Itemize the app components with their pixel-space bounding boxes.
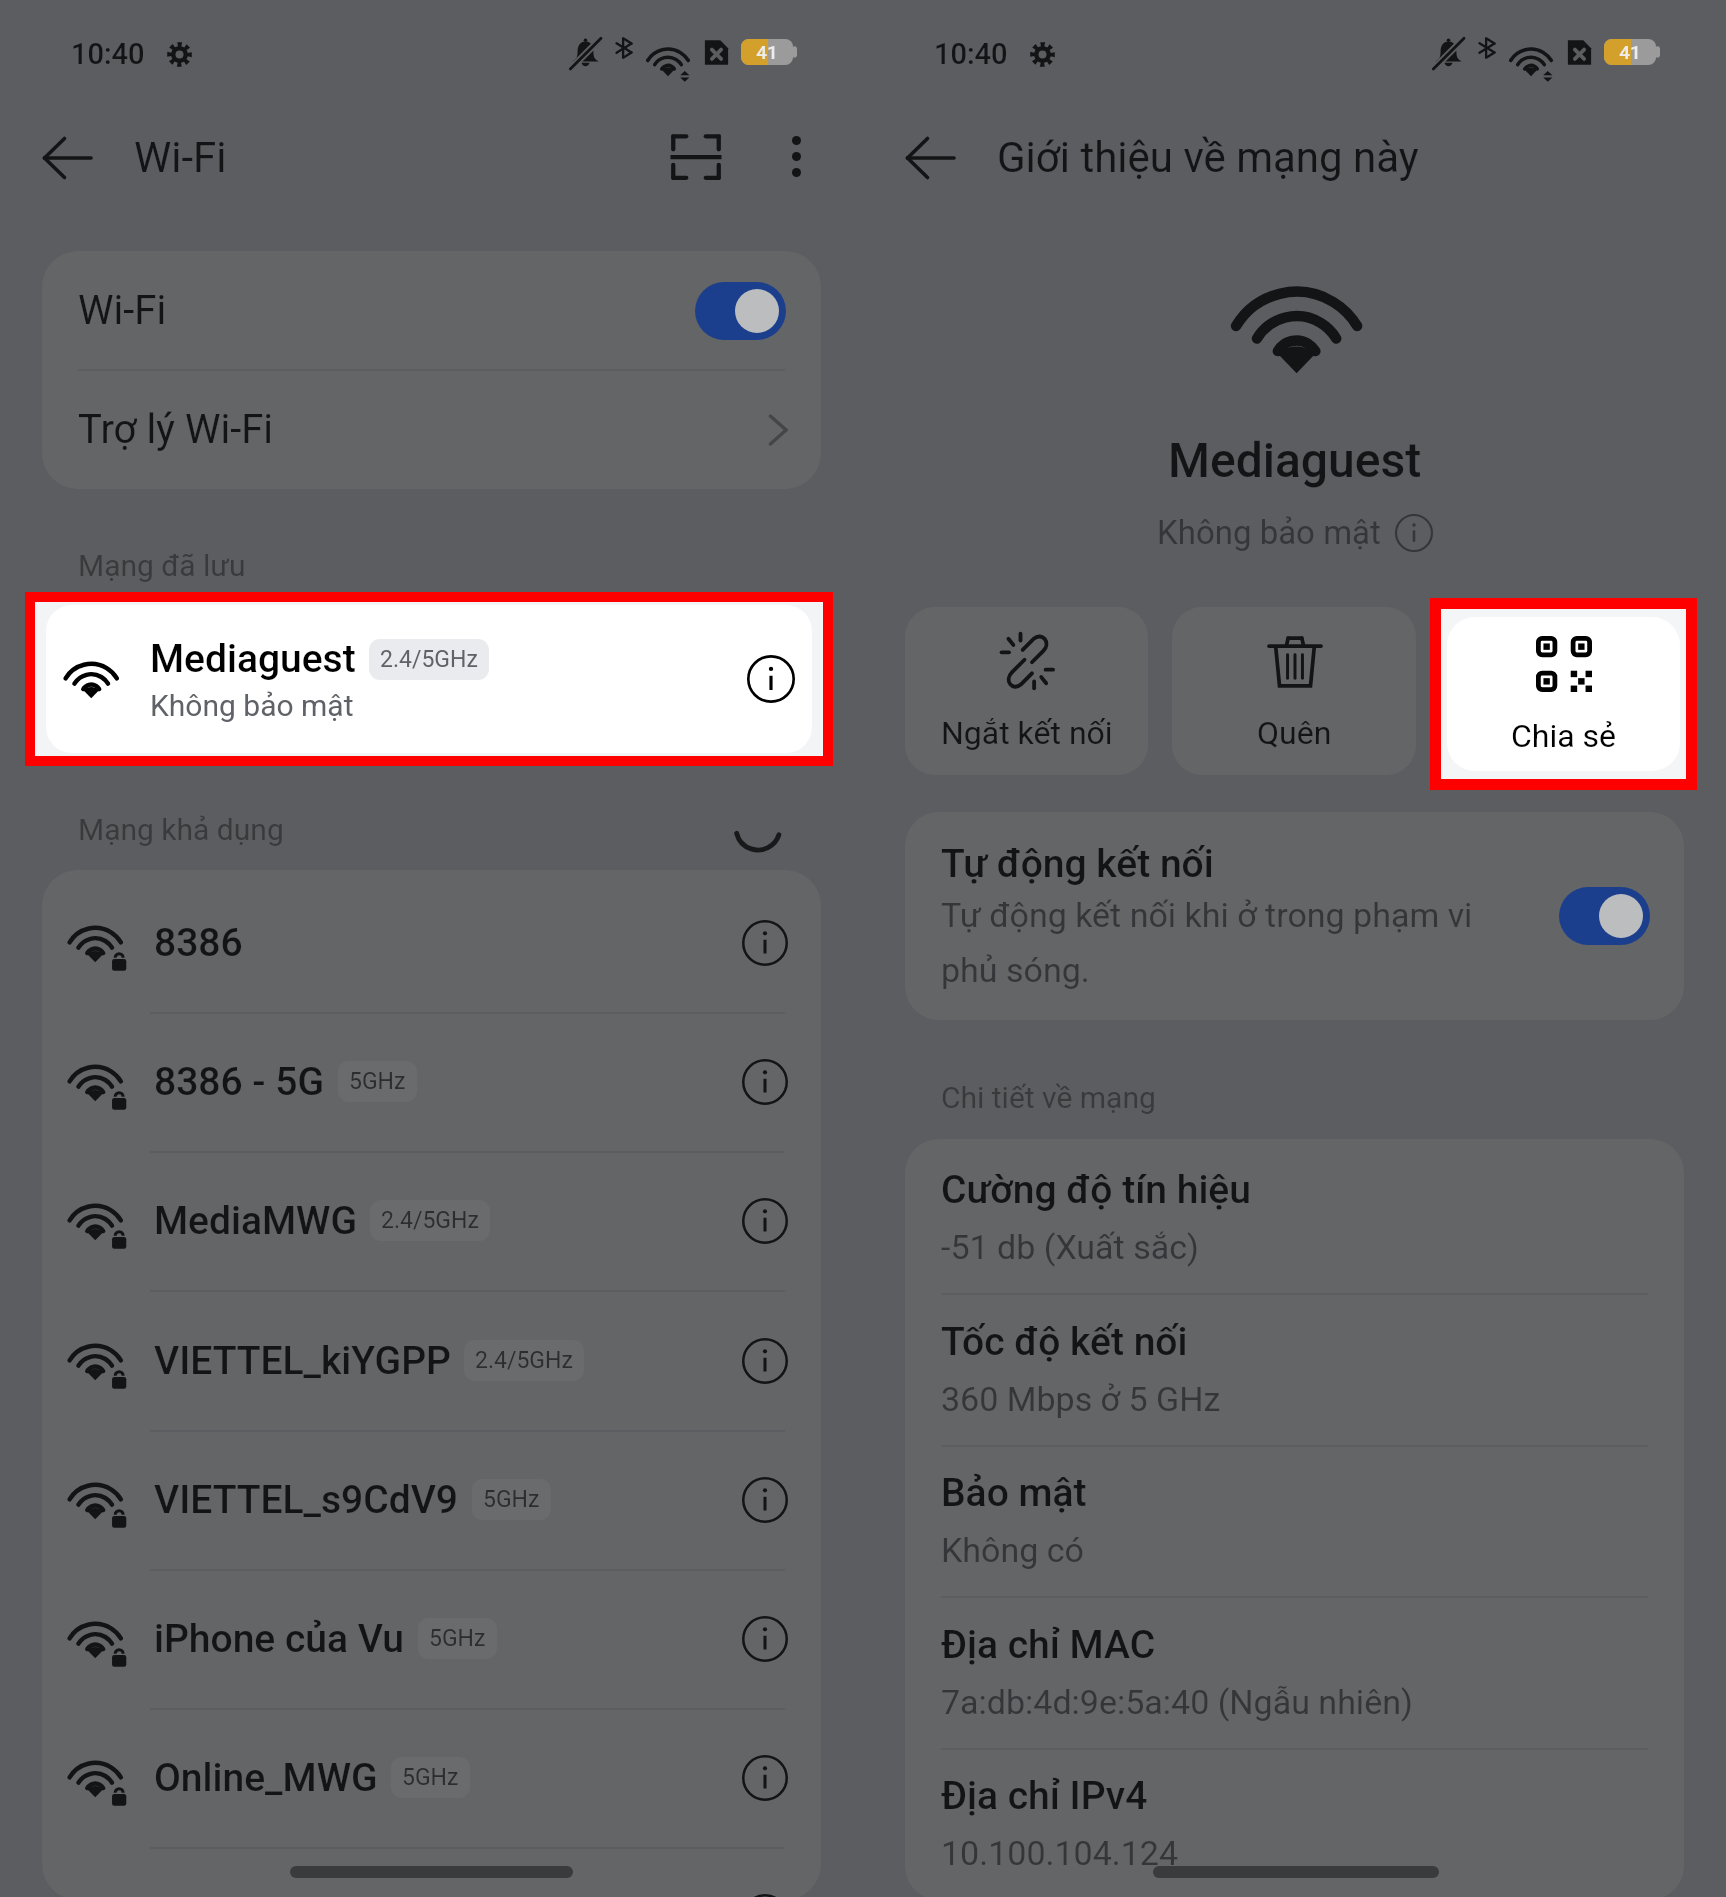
staticText: 10:40	[934, 37, 1008, 71]
button[interactable]: MediaMWG	[42, 1151, 821, 1290]
staticText: 10:40	[71, 37, 145, 71]
staticText: Online_MWG	[154, 1755, 378, 1801]
staticText: 41	[756, 41, 778, 63]
button[interactable]: 8386	[42, 873, 821, 1012]
button[interactable]: Địa chỉ MAC	[905, 1594, 1684, 1745]
staticText: Cường độ tín hiệu	[941, 1167, 1251, 1213]
button[interactable]: iPhone của Vu	[42, 1569, 821, 1708]
staticText: 41	[1619, 41, 1641, 63]
staticText: Mediaguest	[1168, 432, 1422, 488]
staticText: Không bảo mật	[150, 688, 354, 723]
staticText: Quên	[1257, 714, 1332, 752]
staticText: 2.4/5GHz	[475, 1347, 573, 1374]
staticText: Địa chỉ MAC	[941, 1622, 1156, 1668]
staticText: 7a:db:4d:9e:5a:40 (Ngẫu nhiên)	[941, 1682, 1413, 1722]
button[interactable]: Chia sẻ	[1447, 617, 1680, 771]
button[interactable]: Trợ lý Wi-Fi	[42, 370, 821, 489]
staticText: 360 Mbps ở 5 GHz	[941, 1379, 1221, 1419]
staticText: 2.4/5GHz	[380, 646, 478, 673]
staticText: VIETTEL_s9CdV9	[154, 1477, 459, 1523]
button[interactable]: Network details	[735, 1052, 795, 1112]
staticText: 5GHz	[483, 1486, 540, 1513]
button[interactable]: Địa chỉ IPv4	[905, 1745, 1684, 1896]
staticText: 2.4/5GHz	[381, 1207, 479, 1234]
staticText: 5GHz	[429, 1625, 486, 1652]
staticText: Giới thiệu về mạng này	[997, 133, 1419, 182]
staticText: 8386 - 5G	[154, 1059, 325, 1105]
staticText: Mediaguest	[150, 636, 356, 682]
button[interactable]: Bảo mật	[905, 1442, 1684, 1593]
button[interactable]: VIETTEL_kiYGPP	[42, 1291, 821, 1430]
button[interactable]: Toggle	[695, 282, 786, 340]
staticText: 8386	[154, 920, 243, 966]
button[interactable]: Quên	[1172, 607, 1416, 775]
button[interactable]: Scan QR code	[656, 117, 736, 197]
staticText: Trợ lý Wi-Fi	[78, 406, 274, 453]
staticText: VIETTEL_kiYGPP	[154, 1338, 451, 1384]
button[interactable]: Network details	[735, 1331, 795, 1391]
staticText: Chia sẻ	[1511, 717, 1617, 755]
staticText: Không bảo mật	[1157, 513, 1381, 552]
button[interactable]: VIETTEL_s9CdV9	[42, 1430, 821, 1569]
button[interactable]: Wi-Fi	[42, 251, 821, 370]
button[interactable]: Network details	[735, 1470, 795, 1530]
button[interactable]: Toggle	[1559, 887, 1650, 945]
button[interactable]: More options	[764, 124, 828, 188]
button[interactable]: Network details	[735, 913, 795, 973]
staticText: Ngắt kết nối	[941, 714, 1113, 752]
button[interactable]: Network details	[42, 1847, 821, 1897]
staticText: Địa chỉ IPv4	[941, 1773, 1148, 1819]
button[interactable]: Network details	[735, 1191, 795, 1251]
staticText: Tự động kết nối khi ở trong phạm vi phủ …	[941, 895, 1473, 991]
button[interactable]: Back	[27, 118, 107, 198]
button[interactable]: Back	[890, 118, 970, 198]
staticText: 10.100.104.124	[941, 1833, 1179, 1873]
staticText: Mạng đã lưu	[78, 548, 246, 583]
staticText: 5GHz	[349, 1068, 406, 1095]
staticText: Mạng khả dụng	[78, 812, 284, 847]
button[interactable]: Network details	[735, 1887, 795, 1897]
button[interactable]: 8386 - 5G	[42, 1012, 821, 1151]
staticText: -51 db (Xuất sắc)	[941, 1227, 1199, 1267]
button[interactable]: Cường độ tín hiệu	[905, 1139, 1684, 1290]
staticText: Tự động kết nối	[941, 841, 1214, 887]
button[interactable]: Network details	[741, 649, 801, 709]
staticText: Không có	[941, 1530, 1084, 1570]
button[interactable]: Tự động kết nối	[905, 812, 1684, 1020]
button[interactable]: Network details	[735, 1609, 795, 1669]
staticText: iPhone của Vu	[154, 1616, 405, 1662]
staticText: MediaMWG	[154, 1198, 357, 1244]
staticText: Wi-Fi	[78, 287, 167, 334]
button[interactable]: Network details	[735, 1748, 795, 1808]
button[interactable]: Ngắt kết nối	[905, 607, 1148, 775]
staticText: Chi tiết về mạng	[941, 1080, 1156, 1115]
button[interactable]: Online_MWG	[42, 1708, 821, 1847]
staticText: Bảo mật	[941, 1470, 1087, 1516]
staticText: Wi-Fi	[134, 133, 227, 182]
staticText: 5GHz	[402, 1764, 459, 1791]
button[interactable]: Tốc độ kết nối	[905, 1291, 1684, 1442]
staticText: Tốc độ kết nối	[941, 1319, 1188, 1365]
button[interactable]: Mediaguest	[46, 605, 812, 753]
